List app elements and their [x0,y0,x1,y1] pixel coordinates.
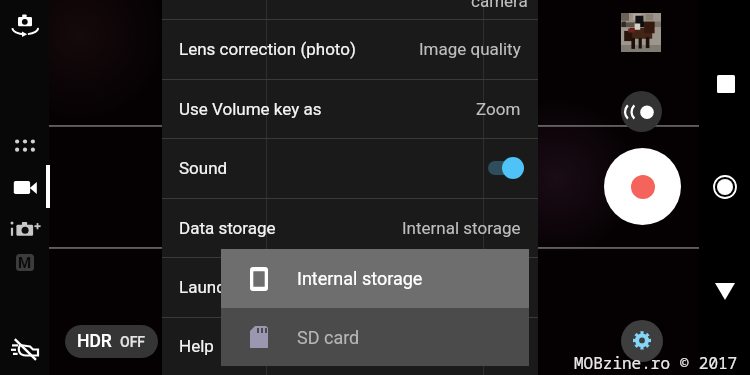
staticText: Data storage [179,218,276,238]
button[interactable]: Back [702,266,747,311]
staticText: Launch with Camera key [179,277,364,297]
staticText: MOBzine.ro © 2017 [574,352,738,374]
button[interactable]: Help [162,317,538,375]
staticText: Use Volume key as [179,99,322,119]
button[interactable]: Switch camera [3,2,47,46]
button[interactable]: Data storage [162,198,538,257]
button[interactable]: More modes [5,130,45,162]
staticText: Zoom [476,99,521,119]
button[interactable]: Flash off [5,325,45,365]
staticText: SD card [297,327,360,348]
button[interactable]: Lens correction (photo) [162,19,538,79]
button[interactable]: Manual mode [8,248,42,276]
button[interactable]: Use Volume key as [162,79,538,138]
staticText: Lens correction (photo) [179,39,356,59]
button[interactable]: Sound [162,138,538,198]
button[interactable]: Internal storage [221,249,529,308]
button[interactable]: Burst mode [621,91,662,132]
button[interactable]: Video mode [5,170,45,206]
button[interactable]: Launch with Camera key [162,257,538,317]
staticText: Sound [179,158,228,178]
staticText: HDR [77,331,112,352]
button[interactable]: HDR [65,325,158,358]
button[interactable]: Home [702,164,747,209]
staticText: Internal storage [402,218,521,238]
staticText: camera [471,0,528,11]
button[interactable]: SD card [221,308,529,366]
staticText: M [18,254,32,271]
button[interactable]: Recents [703,61,748,106]
button[interactable]: Last photo [621,13,661,52]
button[interactable]: Photo mode [5,214,49,242]
staticText: Image quality [419,39,521,59]
button[interactable]: Record [604,148,681,225]
staticText: Internal storage [297,268,423,289]
button[interactable]: Settings [621,320,663,362]
staticText: Help [179,336,214,356]
staticText: OFF [120,334,146,350]
